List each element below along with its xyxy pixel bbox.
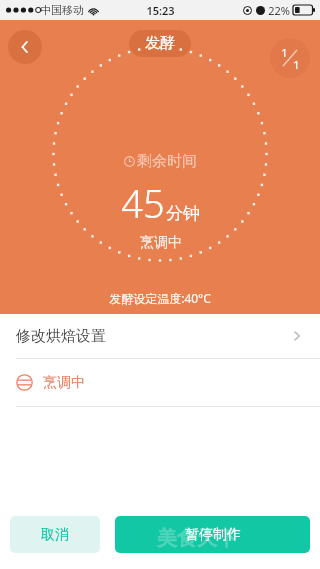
staticText: 22% [268,3,290,18]
staticText: 中国移动 [40,3,84,17]
staticText: 分钟 [166,203,200,224]
staticText: 美食天下 [157,526,237,551]
staticText: 15:23 [146,3,175,18]
staticText: 45 [121,177,165,229]
staticText: 烹调中 [140,234,182,252]
staticText: 剩余时间 [137,152,197,171]
button[interactable]: Back [8,30,42,64]
staticText: 取消 [41,526,69,544]
staticText: 1 [293,57,300,72]
button[interactable]: 修改烘焙设置 [0,314,320,358]
staticText: 暂停制作 [185,526,241,544]
staticText: 发酵设定温度:40°C [109,290,211,306]
staticText: 1 [281,45,288,60]
button[interactable]: 烹调中 [0,359,320,406]
button[interactable]: 发酵 [145,34,175,53]
button[interactable]: 美食天下 [115,516,310,553]
button[interactable]: 取消 [10,516,100,553]
staticText: 发酵 [145,34,175,53]
staticText: 修改烘焙设置 [16,327,106,346]
button[interactable]: Step 1 of 1 [270,38,310,78]
staticText: 烹调中 [43,374,85,392]
